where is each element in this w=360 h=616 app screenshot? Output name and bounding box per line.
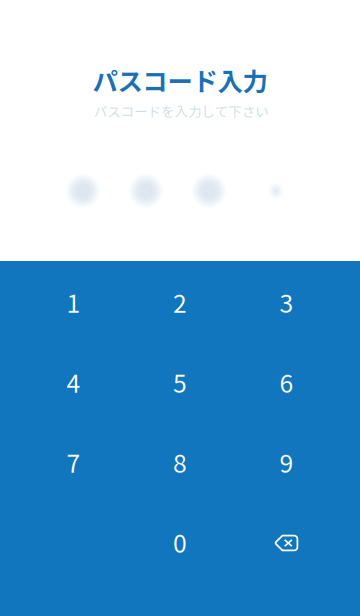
button[interactable]: 3 (233, 264, 339, 340)
staticText: パスコードを入力して下さい (94, 101, 268, 121)
staticText: 5 (173, 364, 187, 400)
staticText: 0 (173, 524, 187, 560)
button[interactable]: 5 (127, 344, 233, 420)
staticText: 4 (66, 364, 80, 400)
staticText: パスコード入力 (92, 62, 267, 98)
staticText: 3 (279, 284, 293, 320)
button[interactable]: 4 (20, 344, 126, 420)
staticText: 8 (173, 444, 187, 480)
button[interactable]: 0 (127, 504, 233, 580)
button[interactable]: 8 (127, 424, 233, 500)
button[interactable]: 9 (233, 424, 339, 500)
staticText: 7 (66, 444, 80, 480)
staticText: 1 (66, 284, 80, 320)
staticText: 6 (279, 364, 293, 400)
button[interactable]: 7 (20, 424, 126, 500)
button[interactable]: 1 (20, 264, 126, 340)
button[interactable]: 6 (233, 344, 339, 420)
button[interactable]: Delete (233, 505, 339, 581)
staticText: 2 (173, 284, 187, 320)
staticText: 9 (279, 444, 293, 480)
button[interactable]: 2 (127, 264, 233, 340)
